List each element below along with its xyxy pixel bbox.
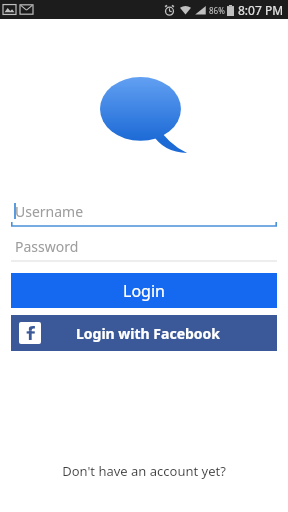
button[interactable]: Password [11,230,277,262]
staticText: Don't have an account yet? [62,462,226,480]
staticText: 86% [209,5,225,16]
staticText: 8:07 PM [238,2,284,18]
button[interactable]: Login with Facebook [11,315,277,351]
button[interactable]: Login [11,273,277,308]
button[interactable]: Username [11,195,277,227]
staticText: Login [123,280,165,302]
staticText: Login with Facebook [76,324,221,343]
staticText: Password [15,237,79,256]
button[interactable]: Don't have an account yet? [0,462,288,480]
staticText: Username [15,202,84,221]
